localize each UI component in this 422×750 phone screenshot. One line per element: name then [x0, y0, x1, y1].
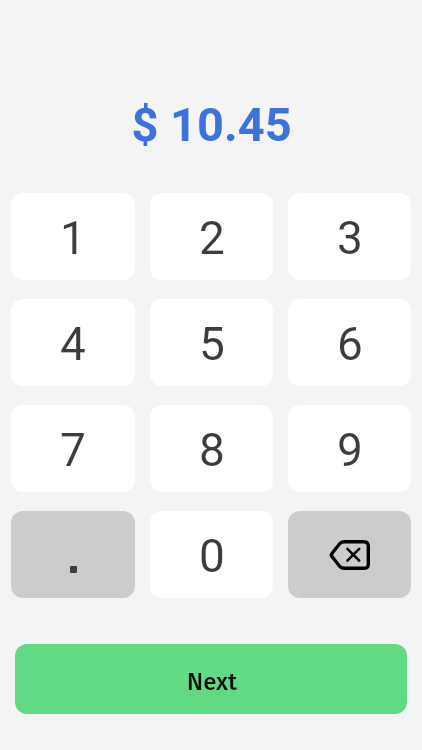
staticText: $ 10.45 — [131, 97, 292, 152]
staticText: Next — [187, 668, 238, 697]
button[interactable] — [11, 511, 135, 598]
button[interactable]: Backspace — [288, 511, 411, 598]
button[interactable]: 7 — [11, 405, 135, 492]
staticText: 9 — [337, 423, 363, 477]
staticText: 2 — [199, 211, 225, 265]
staticText: 8 — [199, 423, 225, 477]
button[interactable]: 6 — [288, 299, 411, 386]
staticText: 7 — [60, 423, 86, 477]
staticText: 3 — [337, 211, 363, 265]
staticText: 4 — [60, 317, 86, 371]
staticText: 6 — [337, 317, 363, 371]
button[interactable]: 9 — [288, 405, 411, 492]
button[interactable]: 3 — [288, 193, 411, 280]
button[interactable]: 1 — [11, 193, 135, 280]
staticText: 5 — [199, 317, 225, 371]
button[interactable]: 8 — [150, 405, 273, 492]
button[interactable]: 4 — [11, 299, 135, 386]
button[interactable]: 2 — [150, 193, 273, 280]
staticText: 0 — [199, 529, 225, 583]
button[interactable]: 0 — [150, 511, 273, 598]
staticText: 1 — [60, 211, 86, 265]
button[interactable]: 5 — [150, 299, 273, 386]
button[interactable]: Next — [15, 644, 407, 714]
